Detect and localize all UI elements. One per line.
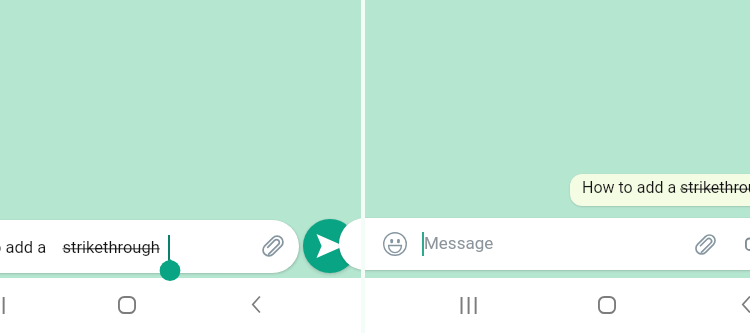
button[interactable]: Camera: [745, 233, 750, 255]
button[interactable]: Send: [303, 219, 357, 273]
button[interactable]: Recents: [460, 297, 477, 314]
button[interactable]: Home: [598, 296, 616, 314]
button[interactable]: Emoji: [383, 232, 407, 256]
button[interactable]: How to add a strikethroug: [570, 174, 750, 206]
button[interactable]: Attach: [694, 233, 717, 256]
button[interactable]: Back: [738, 296, 750, 313]
button[interactable]: Recents: [0, 297, 5, 314]
button[interactable]: Attach: [261, 234, 285, 258]
button[interactable]: Back: [248, 296, 265, 313]
button[interactable]: Home: [118, 296, 136, 314]
staticText: How to add a strikethroug: [582, 178, 750, 197]
staticText: Message: [424, 233, 494, 253]
button[interactable]: [339, 218, 750, 270]
button[interactable]: [0, 220, 299, 273]
staticText: o add a strikethrough: [0, 238, 160, 257]
